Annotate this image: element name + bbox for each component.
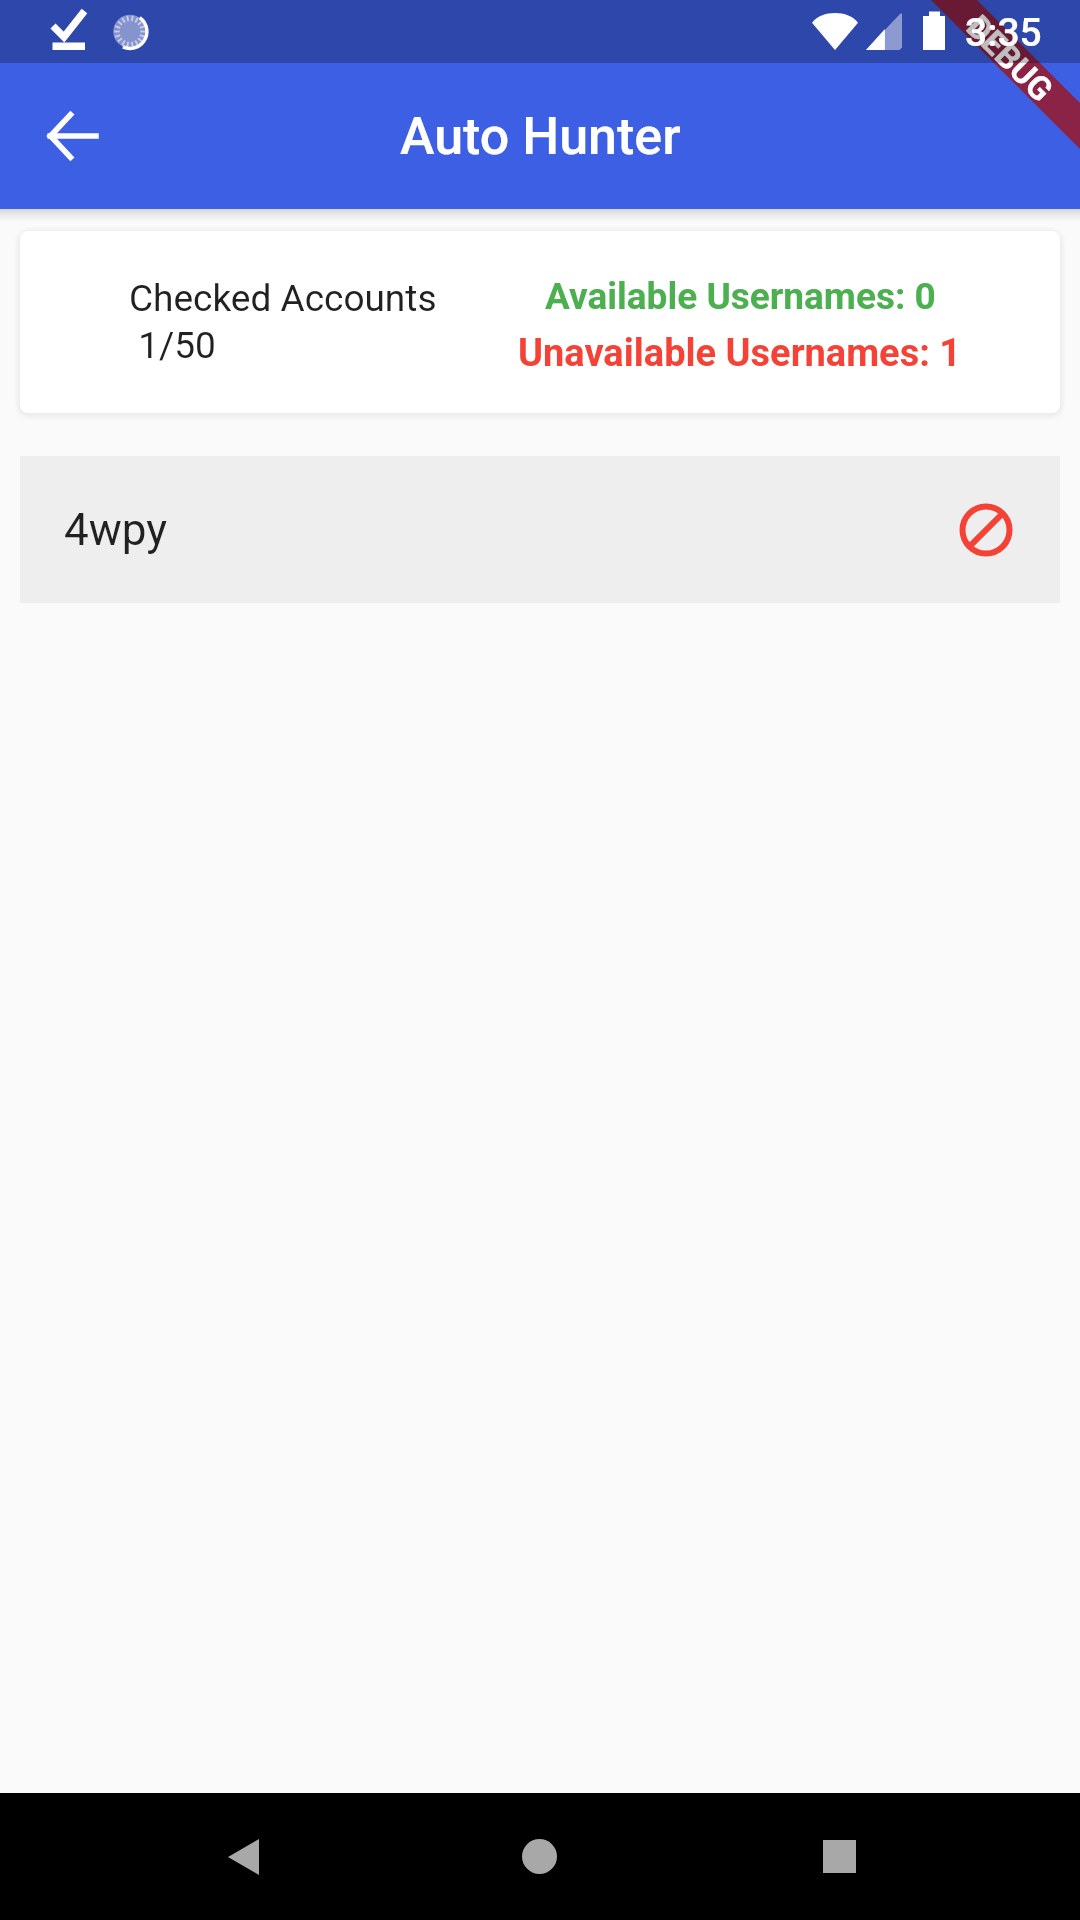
staticText: Auto Hunter <box>400 106 681 167</box>
staticText: 3:35 <box>965 10 1042 56</box>
button[interactable]: Back <box>28 92 116 180</box>
button[interactable]: 4wpy <box>20 456 1060 603</box>
button[interactable]: Back <box>193 1793 293 1920</box>
staticText: DEBUG <box>959 7 1061 110</box>
staticText: Checked Accounts 1/50 <box>129 277 437 367</box>
button[interactable]: Recent apps <box>789 1793 889 1920</box>
staticText: 4wpy <box>64 504 168 556</box>
staticText: Unavailable Usernames: 1 <box>518 331 962 376</box>
other: Username unavailable <box>957 501 1015 559</box>
staticText: Available Usernames: 0 <box>545 275 936 318</box>
button[interactable]: Home <box>489 1793 589 1920</box>
